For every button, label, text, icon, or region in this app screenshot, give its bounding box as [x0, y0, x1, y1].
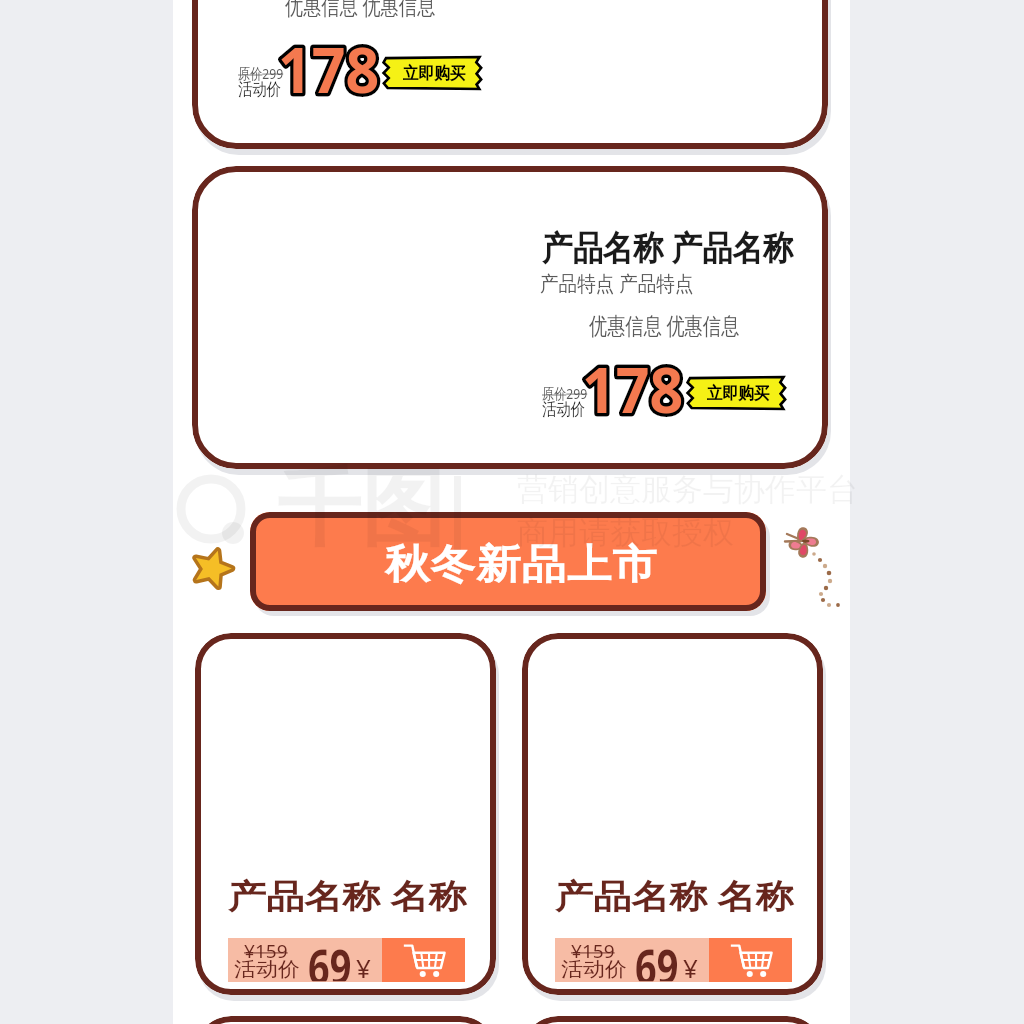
- button[interactable]: 产品名称 名称: [522, 633, 823, 995]
- staticText: 活动价: [542, 399, 585, 420]
- staticText: 商用请获取授权: [517, 513, 734, 552]
- staticText: 优惠信息 优惠信息: [589, 309, 739, 340]
- button[interactable]: 立即购买: [383, 57, 482, 89]
- staticText: 178: [278, 27, 380, 111]
- button[interactable]: 产品名称 产品名称: [192, 0, 828, 149]
- button[interactable]: Add to cart: [709, 938, 792, 982]
- staticText: 活动价: [561, 957, 627, 982]
- staticText: 178: [582, 347, 684, 431]
- staticText: 产品特点 产品特点: [540, 268, 694, 296]
- staticText: 千图: [277, 456, 445, 562]
- staticText: ¥: [356, 950, 371, 985]
- staticText: 178: [278, 27, 380, 111]
- staticText: 产品名称 名称: [555, 873, 794, 918]
- button[interactable]: 立即购买: [687, 377, 786, 409]
- staticText: 原价299: [542, 382, 588, 403]
- button[interactable]: 产品名称 产品名称: [192, 166, 828, 469]
- staticText: 立即购买: [403, 63, 465, 84]
- staticText: 69: [635, 933, 679, 981]
- staticText: ¥159: [244, 939, 288, 964]
- staticText: 立即购买: [707, 383, 769, 404]
- staticText: 原价299: [238, 63, 284, 83]
- staticText: ¥159: [571, 939, 615, 964]
- staticText: 活动价: [238, 79, 281, 100]
- staticText: ¥: [683, 950, 698, 985]
- staticText: 69: [308, 933, 352, 981]
- staticText: 产品名称 产品名称: [542, 224, 793, 270]
- staticText: 活动价: [234, 957, 300, 982]
- staticText: 产品名称 名称: [228, 873, 467, 918]
- button[interactable]: 产品名称 名称: [195, 633, 496, 995]
- button[interactable]: Add to cart: [382, 938, 465, 982]
- staticText: 优惠信息 优惠信息: [285, 0, 435, 20]
- staticText: 营销创意服务与协作平台: [517, 470, 858, 509]
- button[interactable]: 秋冬新品上市: [250, 512, 766, 611]
- staticText: 178: [582, 347, 684, 431]
- staticText: 秋冬新品上市: [384, 539, 658, 589]
